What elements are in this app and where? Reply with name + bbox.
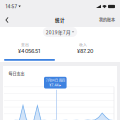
staticText: ¥4056.51 xyxy=(18,48,40,54)
button[interactable]: 2019年7月 xyxy=(43,27,77,37)
staticText: 我的账本 xyxy=(99,17,115,23)
button[interactable]: Back xyxy=(0,13,17,27)
staticText: 7月04日 周四 xyxy=(46,78,65,83)
button[interactable]: 我的账本 xyxy=(91,13,120,27)
staticText: ¥7.44 ▸ xyxy=(49,83,61,87)
staticText: 收入 xyxy=(79,42,87,47)
staticText: ¥87.20 xyxy=(77,48,93,54)
staticText: 统计 xyxy=(55,17,65,23)
staticText: 每日支出 xyxy=(8,71,24,77)
staticText: 2019年7月 xyxy=(46,28,71,35)
staticText: 支出 xyxy=(21,42,29,47)
staticText: 14:57 xyxy=(5,4,17,9)
